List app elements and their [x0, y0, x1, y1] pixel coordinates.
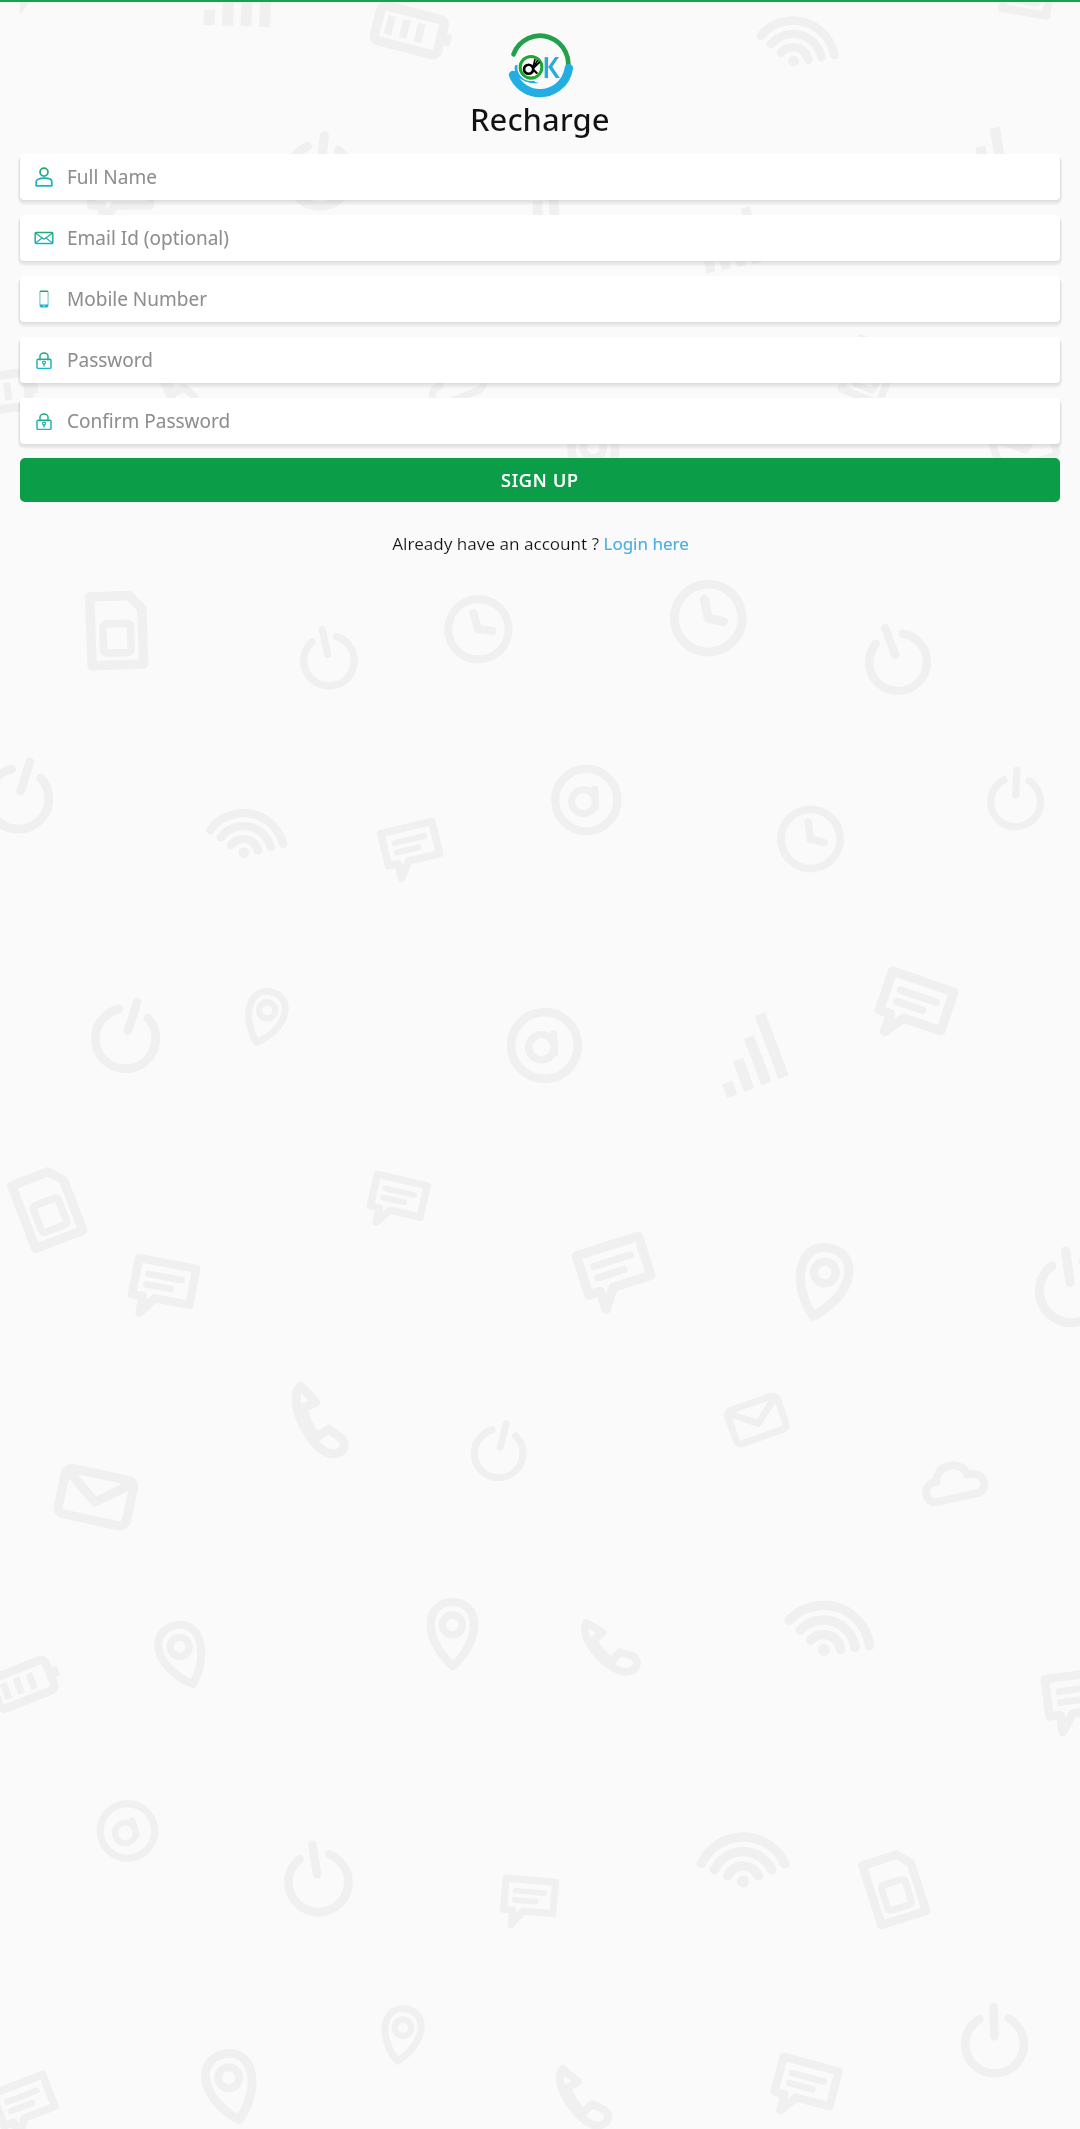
- staticText: Already have an account ? Login here: [392, 532, 689, 555]
- staticText: Full Name: [67, 164, 157, 190]
- staticText: Mobile Number: [67, 286, 208, 312]
- staticText: Recharge: [470, 98, 610, 140]
- button[interactable]: Mobile Number: [20, 276, 1060, 322]
- staticText: SIGN UP: [501, 468, 579, 493]
- button[interactable]: Email Id (optional): [20, 215, 1060, 261]
- staticText: Email Id (optional): [67, 225, 229, 251]
- button[interactable]: Confirm Password: [20, 398, 1060, 444]
- button[interactable]: Already have an account ? Login here: [20, 532, 1060, 555]
- staticText: Confirm Password: [67, 408, 231, 434]
- staticText: Password: [67, 347, 153, 373]
- button[interactable]: Full Name: [20, 154, 1060, 200]
- button[interactable]: Password: [20, 337, 1060, 383]
- button[interactable]: SIGN UP: [20, 458, 1060, 502]
